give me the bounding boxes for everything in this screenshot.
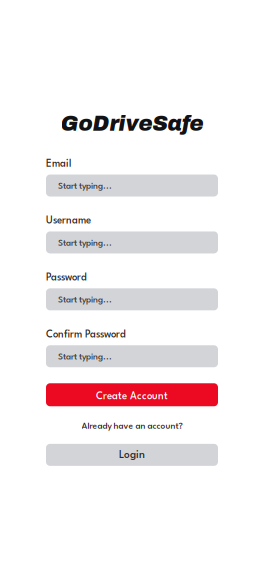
staticText: Already have an account?	[81, 422, 182, 431]
button[interactable]: Start typing...	[46, 231, 218, 253]
button[interactable]: Start typing...	[46, 288, 218, 310]
staticText: Start typing...	[58, 353, 112, 362]
staticText: Email	[46, 159, 71, 169]
button[interactable]: Create Account	[46, 383, 218, 406]
staticText: Start typing...	[58, 296, 112, 305]
button[interactable]: Start typing...	[46, 174, 218, 196]
button[interactable]: Login	[46, 444, 218, 466]
staticText: GoDriveSafe	[60, 112, 203, 135]
staticText: Username	[46, 216, 91, 226]
staticText: Create Account	[96, 392, 168, 402]
staticText: Start typing...	[58, 239, 112, 248]
staticText: Confirm Password	[46, 330, 126, 340]
staticText: Start typing...	[58, 182, 112, 191]
button[interactable]: Start typing...	[46, 345, 218, 367]
staticText: Login	[119, 450, 145, 460]
staticText: Password	[46, 273, 87, 283]
